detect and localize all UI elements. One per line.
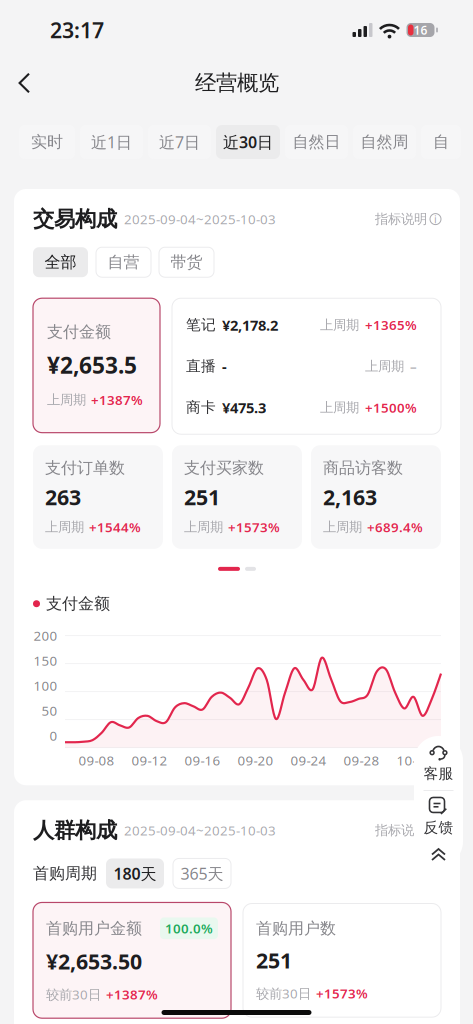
staticText: 全部 — [44, 252, 76, 272]
button[interactable]: 180天 — [106, 858, 164, 888]
staticText: 首购周期 — [33, 864, 97, 883]
staticText: 指标说明 — [375, 211, 427, 227]
staticText: i — [434, 212, 437, 226]
staticText: 上周期 — [323, 519, 362, 535]
staticText: 263 — [45, 483, 81, 511]
staticText: 16 — [413, 22, 427, 38]
button[interactable]: 客服 — [414, 736, 463, 790]
staticText: 较前30日 — [256, 984, 311, 1002]
staticText: 251 — [256, 946, 292, 974]
staticText: +1500% — [365, 399, 417, 416]
staticText: 上周期 — [47, 392, 86, 408]
button[interactable]: 指标说明 — [375, 211, 441, 227]
staticText: ¥475.3 — [222, 398, 266, 417]
staticText: 100 — [33, 677, 57, 694]
button[interactable]: 全部 — [33, 247, 88, 277]
staticText: 200 — [33, 627, 57, 644]
staticText: – — [410, 357, 417, 375]
staticText: 10-03 — [396, 751, 432, 769]
staticText: 商品访客数 — [323, 458, 403, 478]
staticText: 2025-09-04~2025-10-03 — [124, 821, 276, 839]
staticText: 近7日 — [159, 131, 200, 153]
button[interactable]: 近30日 — [216, 125, 280, 159]
staticText: 近1日 — [91, 131, 132, 153]
staticText: 09-28 — [343, 751, 379, 769]
staticText: 365天 — [180, 863, 223, 884]
staticText: 自然日 — [292, 132, 340, 152]
staticText: 150 — [33, 652, 57, 669]
staticText: 上周期 — [184, 519, 223, 535]
staticText: 上周期 — [45, 519, 84, 535]
staticText: 支付订单数 — [45, 458, 125, 478]
staticText: 2025-09-04~2025-10-03 — [124, 210, 276, 228]
button[interactable]: 自然日 — [285, 125, 348, 159]
staticText: 自然周 — [360, 132, 408, 152]
staticText: 经营概览 — [195, 70, 279, 96]
button[interactable]: 首购用户金额 — [33, 902, 231, 1018]
staticText: +1573% — [228, 518, 280, 536]
button[interactable]: 近7日 — [148, 125, 211, 159]
button[interactable]: 反馈 — [414, 791, 463, 843]
staticText: 直播 — [186, 357, 216, 375]
button[interactable]: 回到顶部 — [414, 843, 463, 866]
staticText: 客服 — [423, 764, 453, 782]
staticText: ¥2,178.2 — [222, 315, 278, 335]
button[interactable]: 返回 — [0, 61, 49, 104]
staticText: +1387% — [106, 985, 158, 1003]
staticText: 251 — [184, 483, 220, 511]
staticText: 首购用户数 — [256, 918, 336, 938]
staticText: 支付买家数 — [184, 458, 264, 478]
staticText: 50 — [41, 702, 57, 719]
staticText: +1573% — [316, 984, 368, 1002]
button[interactable]: 商品访客数 — [311, 445, 441, 549]
staticText: 反馈 — [423, 818, 453, 836]
button[interactable]: 近1日 — [80, 125, 143, 159]
staticText: +689.4% — [367, 518, 423, 536]
staticText: 09-16 — [184, 751, 220, 769]
button[interactable]: 365天 — [173, 858, 231, 888]
staticText: 支付金额 — [47, 322, 111, 342]
staticText: 商卡 — [186, 398, 216, 416]
staticText: 实时 — [31, 132, 63, 152]
staticText: 指标说明 — [375, 822, 427, 839]
staticText: 交易构成 — [33, 206, 117, 232]
button[interactable]: 实时 — [19, 125, 75, 159]
staticText: 支付金额 — [46, 594, 110, 614]
staticText: ¥2,653.50 — [46, 947, 142, 975]
staticText: 较前30日 — [46, 985, 101, 1003]
staticText: +1544% — [89, 518, 141, 536]
staticText: 0 — [49, 727, 57, 744]
button[interactable]: 自 — [421, 125, 461, 159]
staticText: 上周期 — [320, 317, 359, 333]
staticText: 自 — [433, 132, 449, 152]
staticText: 上周期 — [320, 399, 359, 416]
button[interactable]: 指标说明 — [375, 822, 441, 839]
button[interactable]: 支付买家数 — [172, 445, 302, 549]
staticText: - — [222, 356, 227, 376]
staticText: 23:17 — [50, 16, 104, 44]
staticText: +1387% — [91, 391, 143, 409]
staticText: 近30日 — [223, 131, 273, 153]
button[interactable]: 自营 — [96, 247, 151, 277]
staticText: ¥2,653.5 — [47, 350, 137, 380]
staticText: 09-24 — [290, 751, 326, 769]
staticText: 09-12 — [131, 751, 167, 769]
staticText: 笔记 — [186, 316, 216, 334]
button[interactable]: 支付订单数 — [33, 445, 163, 549]
button[interactable]: 带货 — [159, 247, 214, 277]
staticText: 人群构成 — [33, 817, 117, 843]
staticText: 上周期 — [365, 358, 404, 374]
button[interactable]: 自然周 — [353, 125, 416, 159]
staticText: 带货 — [170, 252, 202, 272]
staticText: 自营 — [107, 252, 139, 272]
staticText: +1365% — [365, 316, 417, 334]
staticText: 首购用户金额 — [46, 918, 142, 938]
button[interactable]: 首购用户数 — [243, 903, 441, 1017]
staticText: 09-08 — [78, 751, 114, 769]
staticText: 09-20 — [237, 751, 273, 769]
staticText: 2,163 — [323, 483, 377, 511]
button[interactable]: 支付金额 — [33, 298, 160, 433]
staticText: 180天 — [113, 863, 156, 884]
staticText: i — [434, 823, 437, 837]
staticText: 100.0% — [165, 919, 213, 937]
